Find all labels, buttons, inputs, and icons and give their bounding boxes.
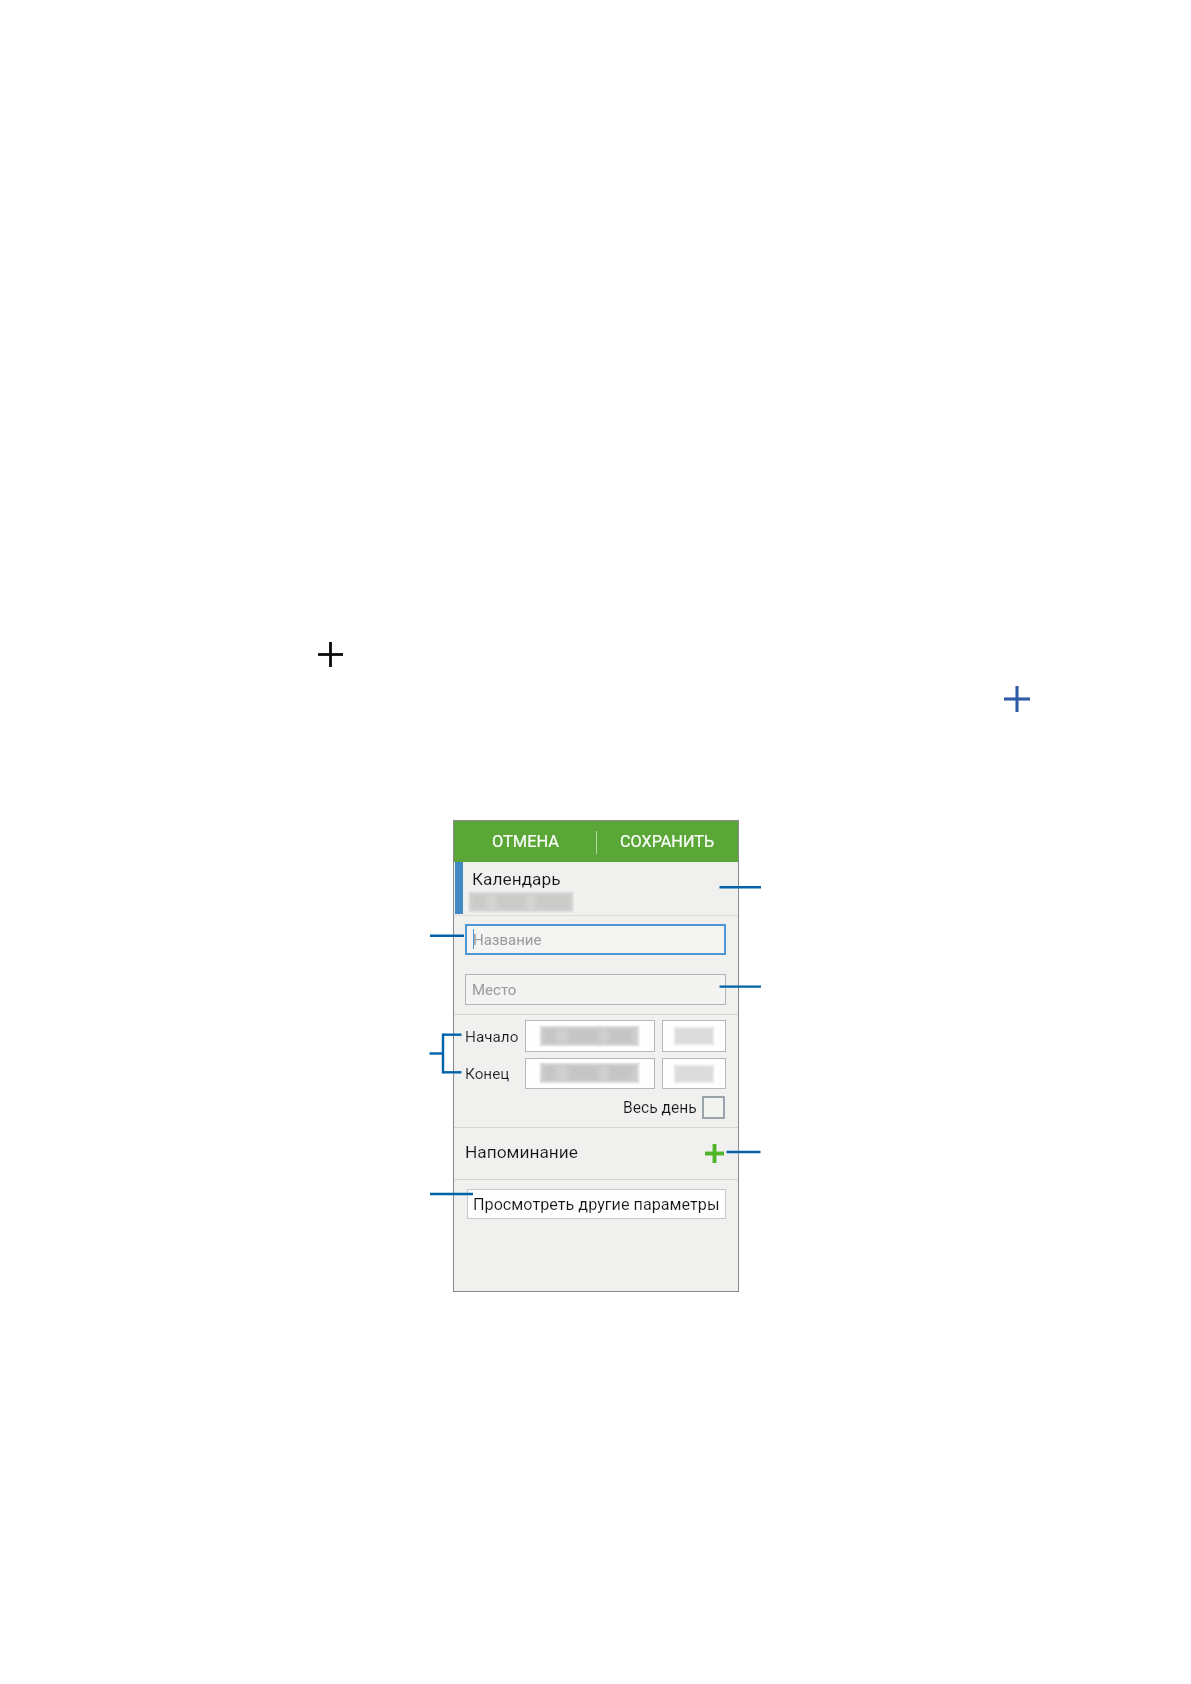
button[interactable] [662, 1020, 726, 1052]
button[interactable]: Календарь [454, 862, 738, 915]
button[interactable]: Место [465, 974, 726, 1005]
other: Insert [1004, 686, 1030, 712]
staticText: Начало [465, 1028, 519, 1046]
button[interactable]: ОТМЕНА [454, 821, 596, 862]
staticText: Конец [465, 1065, 510, 1083]
button[interactable] [662, 1058, 726, 1089]
staticText: Просмотреть другие параметры [473, 1195, 720, 1214]
staticText: СОХРАНИТЬ [620, 832, 715, 851]
staticText: ОТМЕНА [492, 832, 559, 851]
button[interactable]: Название [465, 924, 726, 955]
staticText: Напоминание [465, 1142, 578, 1162]
staticText: Весь день [623, 1099, 697, 1117]
other: Insert [318, 642, 343, 667]
button[interactable] [525, 1020, 655, 1052]
button[interactable]: Добавить напоминание [705, 1144, 724, 1163]
button[interactable]: СОХРАНИТЬ [596, 821, 738, 862]
button[interactable]: Просмотреть другие параметры [467, 1189, 726, 1219]
button[interactable] [525, 1058, 655, 1089]
staticText: Место [472, 981, 517, 999]
button[interactable]: Весь день [605, 1096, 725, 1119]
staticText: Календарь [472, 869, 561, 889]
staticText: Название [473, 931, 542, 949]
button[interactable]: Напоминание [454, 1127, 738, 1179]
